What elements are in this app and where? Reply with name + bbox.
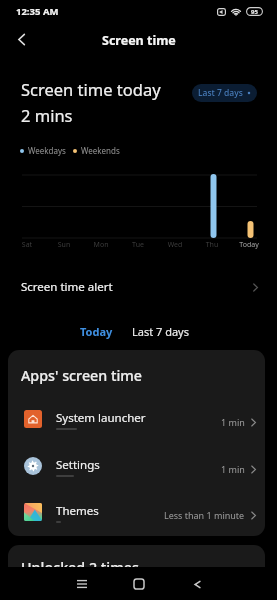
button[interactable]: Recents — [68, 570, 96, 598]
staticText: Settings — [56, 457, 100, 473]
staticText: System launcher — [56, 410, 146, 426]
staticText: Mon — [81, 240, 121, 250]
button[interactable]: Screen time alert — [0, 265, 277, 309]
staticText: Screen time today — [21, 78, 161, 100]
staticText: Last 7 days — [198, 87, 243, 99]
staticText: 12:35 AM — [16, 5, 59, 18]
button[interactable]: Today — [72, 319, 121, 344]
staticText: 1 min — [221, 416, 245, 428]
staticText: Screen time — [102, 32, 176, 49]
staticText: 1 min — [221, 463, 245, 475]
button[interactable]: Home — [125, 570, 153, 598]
staticText: Unlocked 2 times — [21, 558, 139, 577]
staticText: Wed — [155, 240, 195, 250]
staticText: Thu — [192, 240, 232, 250]
staticText: Weekdays — [28, 145, 66, 156]
button[interactable]: Themes — [8, 495, 265, 536]
button[interactable]: Settings — [8, 449, 265, 495]
other: Open screen time alert — [252, 284, 259, 291]
button[interactable]: Last 7 days — [192, 84, 257, 102]
staticText: Weekends — [81, 145, 120, 156]
staticText: Screen time alert — [21, 279, 113, 295]
staticText: Sat — [7, 240, 47, 250]
staticText: Tue — [118, 240, 158, 250]
button[interactable]: Unlocked 2 times — [8, 545, 265, 595]
staticText: Themes — [56, 503, 99, 519]
staticText: Today — [80, 324, 113, 339]
staticText: 95 — [251, 8, 258, 16]
staticText: Apps' screen time — [21, 366, 143, 385]
staticText: 2 mins — [21, 104, 73, 126]
button[interactable]: Back — [183, 570, 211, 598]
staticText: Sun — [44, 240, 84, 250]
button[interactable]: System launcher — [8, 402, 265, 448]
button[interactable]: Back — [6, 24, 36, 54]
staticText: Today — [229, 240, 269, 250]
staticText: Less than 1 minute — [164, 509, 245, 521]
staticText: Last 7 days — [132, 324, 190, 339]
button[interactable]: Last 7 days — [124, 319, 198, 344]
